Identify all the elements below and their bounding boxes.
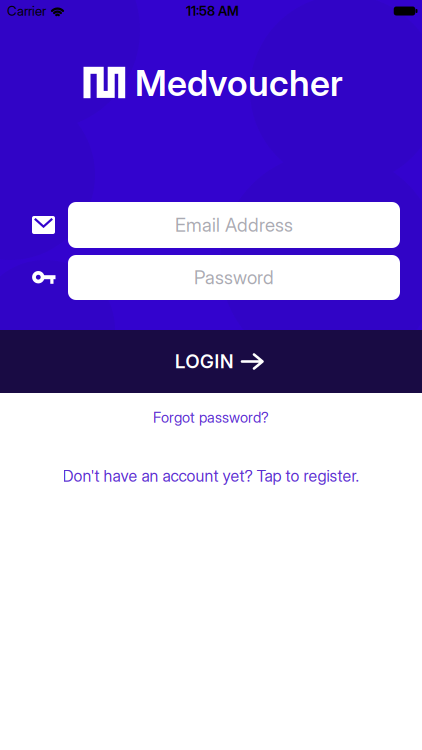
- staticText: Medvoucher: [135, 62, 343, 104]
- staticText: Don't have an account yet? Tap to regist…: [62, 467, 359, 485]
- staticText: Forgot password?: [153, 409, 269, 426]
- button[interactable]: Password: [68, 255, 400, 300]
- button[interactable]: Don't have an account yet? Tap to regist…: [62, 467, 359, 485]
- staticText: Password: [194, 266, 274, 288]
- button[interactable]: Email Address: [68, 202, 400, 248]
- staticText: 11:58 AM: [186, 3, 239, 19]
- staticText: Carrier: [7, 3, 46, 19]
- staticText: LOGIN: [175, 350, 233, 372]
- staticText: Email Address: [175, 214, 293, 236]
- button[interactable]: LOGIN: [0, 330, 422, 393]
- button[interactable]: Forgot password?: [153, 409, 269, 426]
